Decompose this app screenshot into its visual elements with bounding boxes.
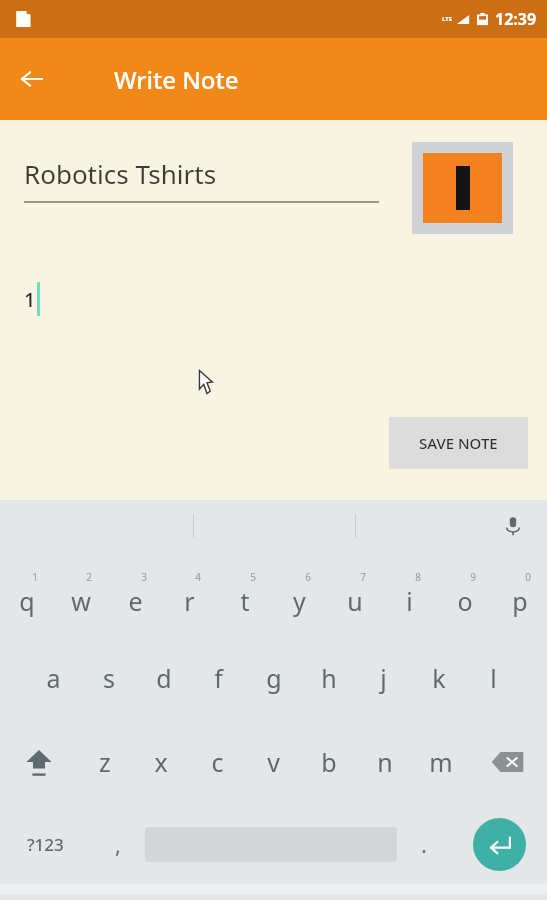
staticText: n (377, 745, 393, 779)
staticText: l (490, 661, 497, 695)
staticText: o (457, 584, 473, 618)
staticText: 2 (86, 570, 92, 584)
staticText: u (347, 584, 363, 618)
staticText: q (19, 584, 35, 618)
button[interactable]: x (133, 720, 189, 804)
button[interactable]: a (26, 636, 81, 720)
button[interactable]: SAVE NOTE (389, 417, 528, 469)
button[interactable]: Enter (451, 804, 547, 884)
button[interactable]: Space (145, 804, 397, 884)
staticText: e (128, 584, 143, 618)
button[interactable]: v (245, 720, 301, 804)
staticText: t (240, 584, 250, 618)
staticText: ?123 (27, 833, 64, 856)
button[interactable]: 8 (382, 552, 437, 636)
staticText: 5 (250, 570, 256, 584)
staticText: j (380, 661, 387, 695)
button[interactable]: 3 (108, 552, 162, 636)
button[interactable]: g (246, 636, 301, 720)
staticText: LTE (442, 15, 453, 23)
staticText: SAVE NOTE (419, 433, 498, 453)
button[interactable]: h (301, 636, 356, 720)
staticText: v (267, 745, 280, 779)
button[interactable]: Backspace (469, 720, 547, 804)
staticText: y (293, 584, 306, 618)
button[interactable]: 4 (162, 552, 217, 636)
staticText: k (432, 661, 446, 695)
button[interactable]: 9 (437, 552, 492, 636)
button[interactable]: 6 (272, 552, 327, 636)
button[interactable]: Back (8, 55, 56, 103)
button[interactable]: n (357, 720, 413, 804)
staticText: 12:39 (495, 8, 537, 30)
staticText: 8 (415, 570, 421, 584)
button[interactable]: f (191, 636, 246, 720)
button[interactable]: , (91, 804, 145, 884)
button[interactable]: c (189, 720, 245, 804)
staticText: g (266, 661, 282, 695)
button[interactable]: 1 (0, 552, 54, 636)
staticText: w (71, 584, 91, 618)
button[interactable]: s (81, 636, 136, 720)
staticText: 1 (32, 570, 38, 584)
staticText: p (512, 584, 528, 618)
staticText: 9 (470, 570, 476, 584)
staticText: s (103, 661, 115, 695)
staticText: 1 (24, 286, 36, 313)
staticText: h (321, 661, 337, 695)
button[interactable]: Shift (0, 720, 77, 804)
staticText: . (421, 829, 427, 859)
staticText: 4 (195, 570, 201, 584)
button[interactable]: j (356, 636, 411, 720)
staticText: c (211, 745, 224, 779)
staticText: b (321, 745, 337, 779)
button[interactable]: 7 (327, 552, 382, 636)
button[interactable]: . (397, 804, 451, 884)
staticText: 7 (360, 570, 366, 584)
button[interactable]: 5 (217, 552, 272, 636)
staticText: i (406, 584, 413, 618)
staticText: m (429, 745, 453, 779)
staticText: x (154, 745, 168, 779)
button[interactable]: k (411, 636, 466, 720)
staticText: Write Note (114, 63, 239, 96)
staticText: d (156, 661, 172, 695)
staticText: , (115, 829, 121, 859)
button[interactable]: d (136, 636, 191, 720)
button[interactable]: Note colour (412, 142, 513, 234)
staticText: a (46, 661, 61, 695)
staticText: 0 (525, 570, 531, 584)
button[interactable]: z (77, 720, 133, 804)
staticText: r (184, 584, 195, 618)
staticText: f (214, 661, 223, 695)
staticText: 6 (305, 570, 311, 584)
button[interactable]: b (301, 720, 357, 804)
staticText: 3 (141, 570, 147, 584)
staticText: Robotics Tshirts (24, 156, 217, 191)
button[interactable]: Robotics Tshirts (24, 156, 379, 203)
staticText: z (99, 745, 111, 779)
button[interactable]: Voice input (493, 506, 533, 546)
button[interactable]: m (413, 720, 469, 804)
button[interactable]: 0 (492, 552, 547, 636)
button[interactable]: 2 (54, 552, 108, 636)
button[interactable]: l (466, 636, 521, 720)
button[interactable]: ?123 (0, 804, 91, 884)
